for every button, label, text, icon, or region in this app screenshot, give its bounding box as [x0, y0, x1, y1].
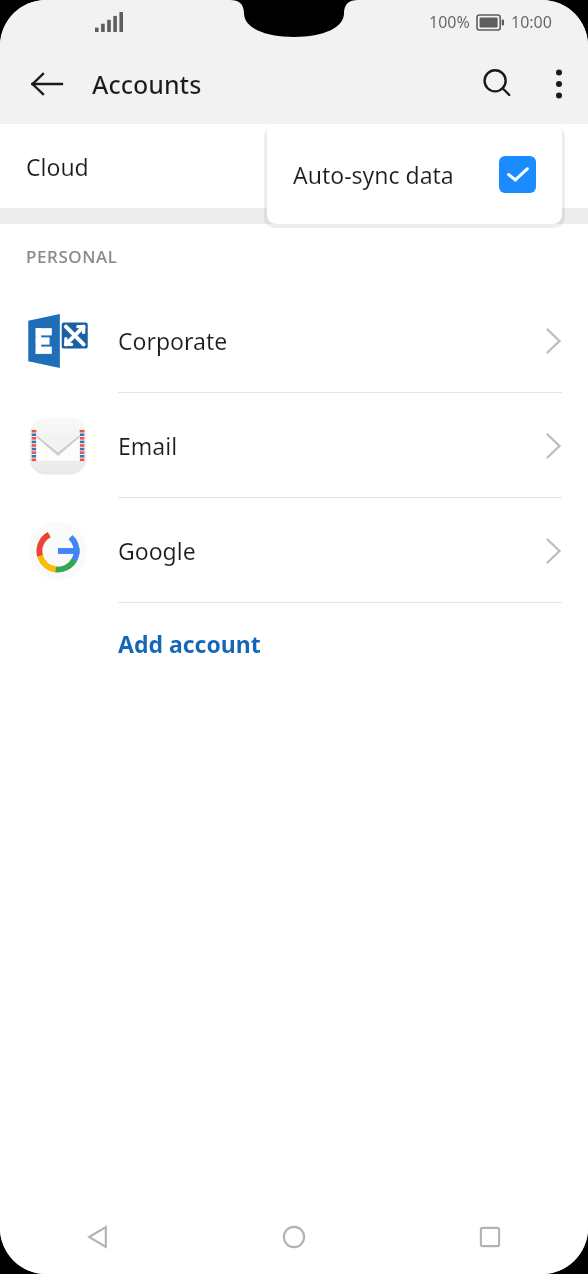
staticText: Add account	[118, 628, 261, 659]
staticText: Email	[118, 430, 178, 461]
button[interactable]: More options	[530, 55, 588, 113]
staticText: 100%	[429, 11, 470, 33]
button[interactable]: Auto-sync data	[267, 124, 562, 224]
staticText: Google	[118, 535, 196, 566]
button[interactable]: Back	[0, 1200, 196, 1274]
staticText: Cloud	[26, 151, 89, 182]
button[interactable]: Email	[0, 393, 588, 498]
button[interactable]: Corporate	[0, 288, 588, 393]
button[interactable]: Add account	[0, 603, 588, 683]
staticText: 10:00	[511, 11, 552, 33]
staticText: Accounts	[92, 67, 202, 101]
button[interactable]: Search	[466, 52, 530, 116]
staticText: PERSONAL	[26, 245, 118, 268]
staticText: Auto-sync data	[293, 159, 454, 190]
button[interactable]: Google	[0, 498, 588, 603]
staticText: Corporate	[118, 325, 228, 356]
button[interactable]: Cloud	[0, 124, 588, 208]
button[interactable]: Recents	[392, 1200, 588, 1274]
button[interactable]: Back	[14, 51, 80, 117]
button[interactable]: Home	[196, 1200, 392, 1274]
